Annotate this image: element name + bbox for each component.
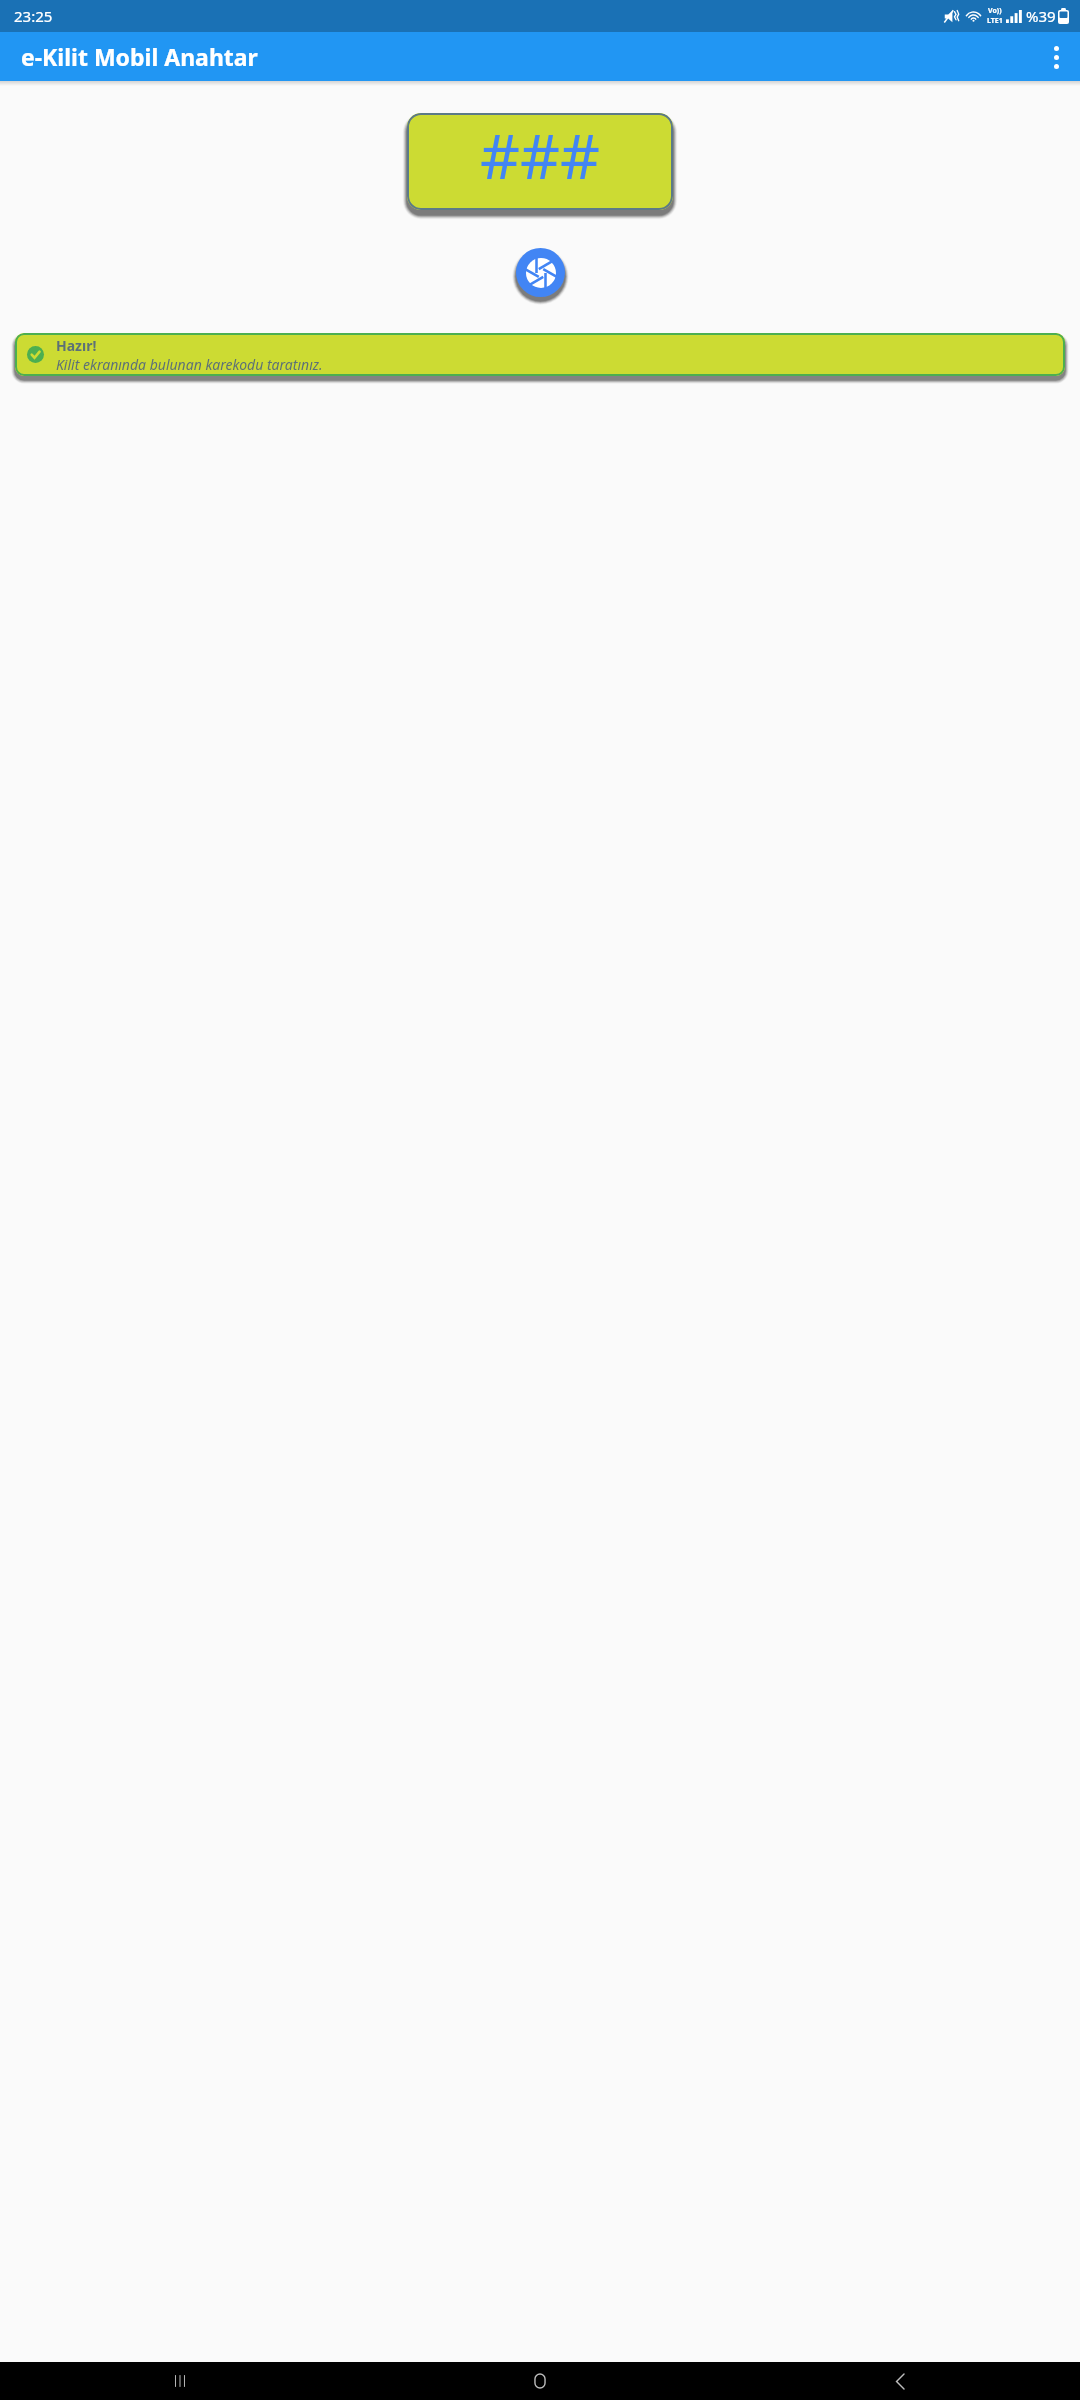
button[interactable]: Recents: [0, 2362, 360, 2400]
button[interactable]: Hazır!: [15, 333, 1065, 376]
staticText: 23:25: [14, 6, 53, 26]
button[interactable]: Back: [720, 2362, 1080, 2400]
staticText: LTE1: [987, 16, 1003, 26]
staticText: ### ###: [407, 113, 673, 210]
staticText: Vo)): [988, 6, 1002, 16]
button[interactable]: ### ###: [407, 113, 673, 210]
button[interactable]: Home: [360, 2362, 720, 2400]
staticText: %39: [1026, 6, 1056, 26]
staticText: Kilit ekranında bulunan karekodu taratın…: [56, 355, 323, 374]
staticText: e-Kilit Mobil Anahtar: [21, 41, 258, 72]
staticText: Hazır!: [56, 336, 97, 355]
button[interactable]: Karekod tara: [516, 248, 565, 297]
button[interactable]: More options: [1032, 33, 1080, 81]
